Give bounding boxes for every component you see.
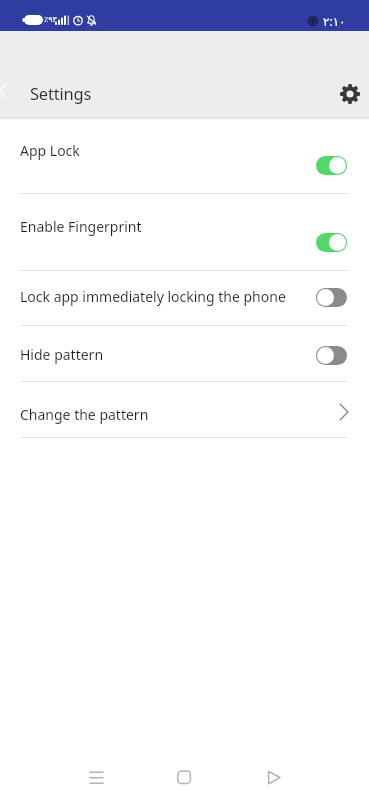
button[interactable]: Lock app immediately locking the phone — [0, 271, 369, 325]
button[interactable] — [338, 82, 362, 106]
staticText: Hide pattern — [20, 345, 104, 364]
button[interactable] — [260, 763, 288, 791]
button[interactable] — [82, 763, 110, 791]
button[interactable] — [170, 763, 198, 791]
button[interactable]: App Lock — [0, 119, 369, 193]
staticText: Change the pattern — [20, 405, 149, 424]
staticText: Enable Fingerprint — [20, 217, 142, 236]
staticText: ٢:١٠ — [323, 13, 346, 29]
staticText: Lock app immediately locking the phone — [20, 287, 286, 306]
button[interactable]: Hide pattern — [0, 326, 369, 381]
button[interactable]: Enable Fingerprint — [0, 194, 369, 270]
staticText: Settings — [30, 82, 92, 104]
staticText: App Lock — [20, 141, 80, 160]
staticText: ٪٩٣ — [44, 15, 57, 24]
button[interactable]: Change the pattern — [0, 382, 369, 437]
